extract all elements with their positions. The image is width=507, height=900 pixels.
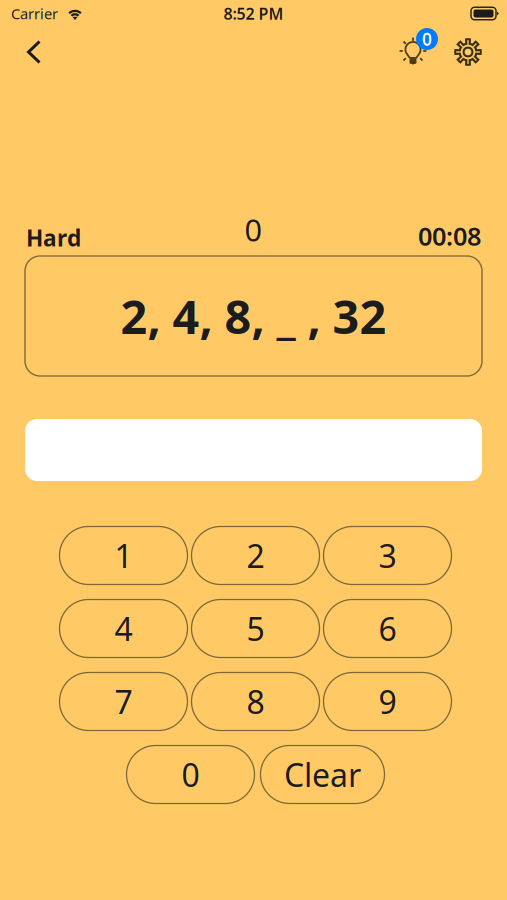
button[interactable]: Hint [394, 29, 432, 75]
staticText: Clear [284, 753, 361, 796]
button[interactable]: Settings [449, 29, 487, 75]
staticText: Hard [26, 223, 81, 253]
staticText: 8 [246, 680, 264, 723]
staticText: 6 [378, 607, 396, 650]
staticText: 2 [246, 534, 264, 577]
button[interactable]: 5 [191, 599, 319, 657]
staticText: Carrier [11, 4, 58, 23]
staticText: 0 [181, 753, 199, 796]
button[interactable]: 7 [59, 672, 187, 730]
button[interactable]: 8 [191, 672, 319, 730]
button[interactable]: 3 [323, 526, 451, 584]
button[interactable]: 6 [323, 599, 451, 657]
staticText: 1 [114, 534, 132, 577]
button[interactable]: Clear [260, 745, 384, 803]
button[interactable]: 0 [126, 745, 254, 803]
staticText: 7 [114, 680, 132, 723]
button[interactable]: 2 [191, 526, 319, 584]
button[interactable]: 1 [59, 526, 187, 584]
staticText: 2, 4, 8, _ , 32 [120, 285, 386, 347]
button[interactable]: 4 [59, 599, 187, 657]
button[interactable]: Back [12, 29, 56, 75]
staticText: 5 [246, 607, 264, 650]
button[interactable]: 9 [323, 672, 451, 730]
staticText: 3 [378, 534, 396, 577]
staticText: 8:52 PM [223, 3, 283, 24]
staticText: 0 [244, 209, 262, 250]
staticText: 0 [422, 27, 432, 50]
staticText: 9 [378, 680, 396, 723]
staticText: 00:08 [418, 219, 481, 253]
staticText: 4 [114, 607, 132, 650]
